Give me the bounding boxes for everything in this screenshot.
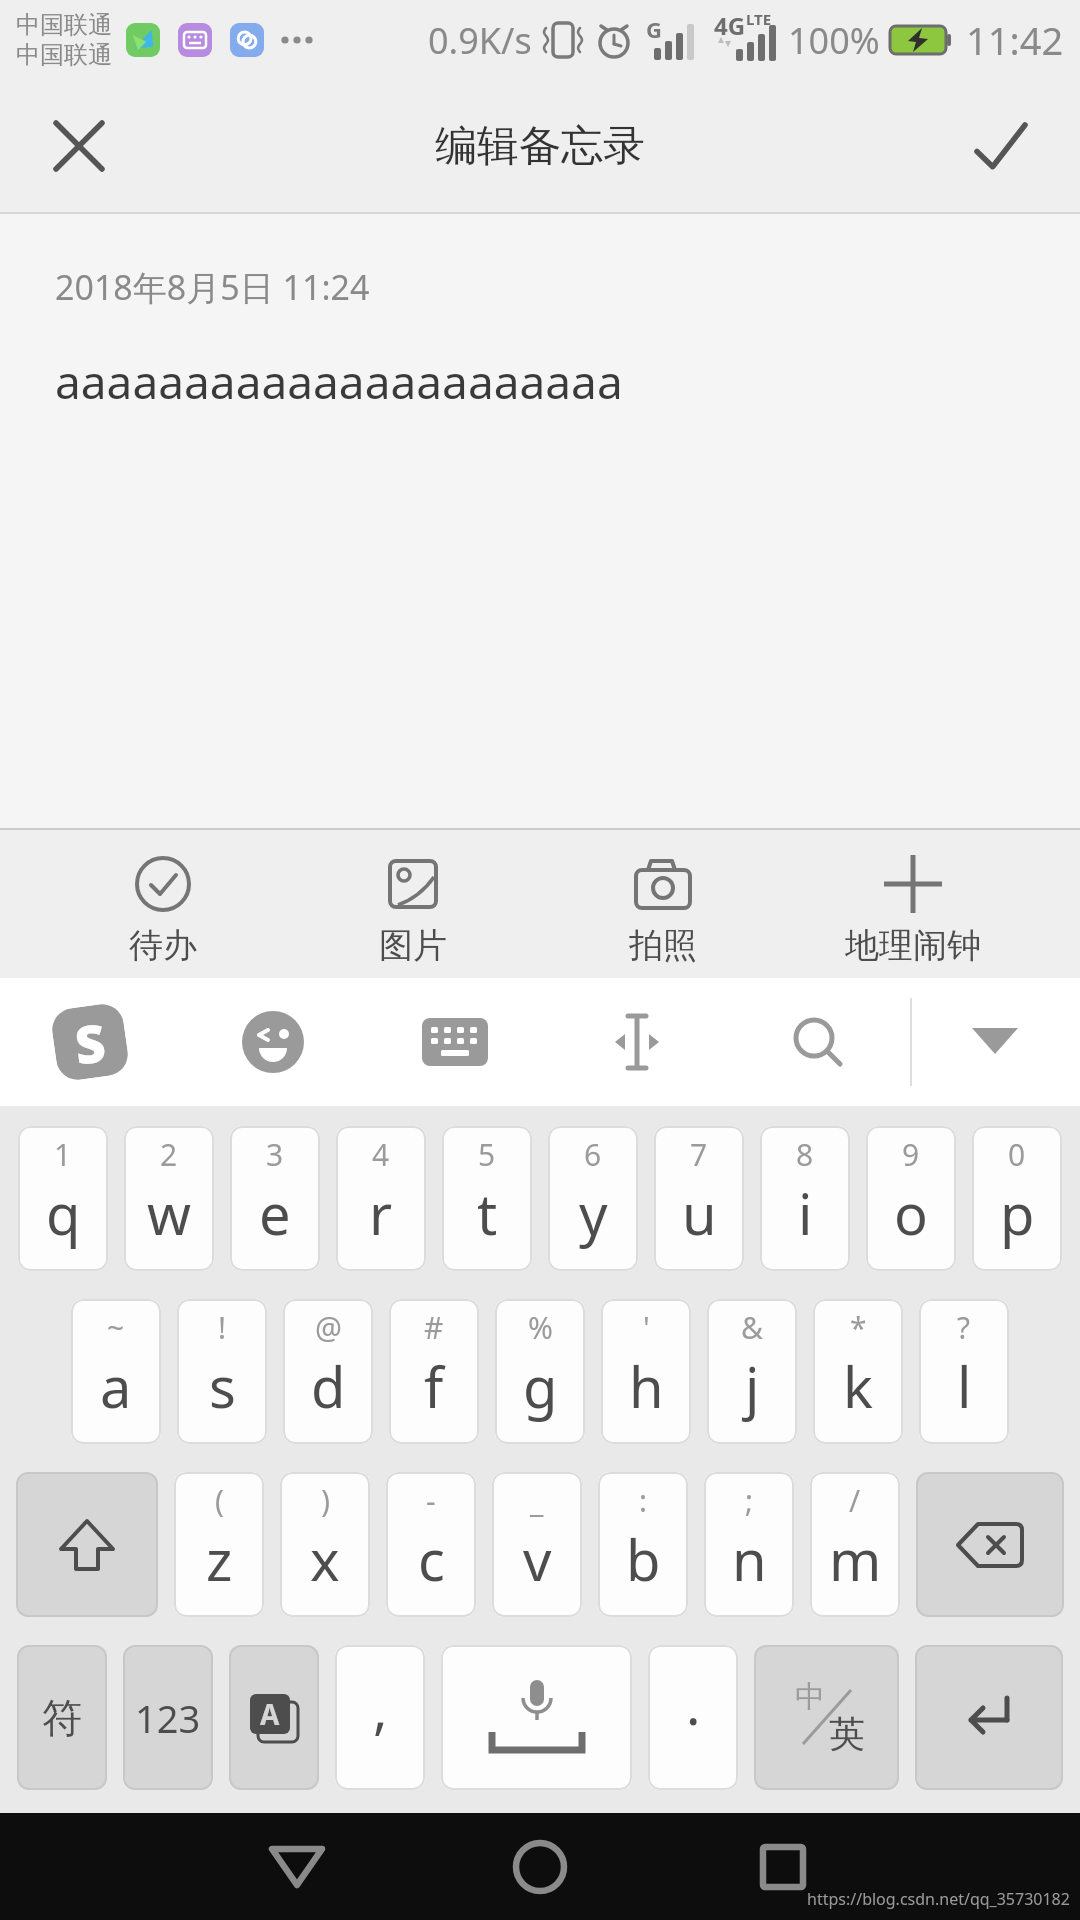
- staticText: k: [843, 1348, 873, 1424]
- staticText: 4: [372, 1134, 390, 1175]
- staticText: b: [626, 1521, 661, 1597]
- button[interactable]: [441, 1645, 632, 1790]
- staticText: 9: [902, 1134, 920, 1175]
- button[interactable]: ': [601, 1299, 691, 1444]
- button[interactable]: [217, 1813, 377, 1920]
- button[interactable]: 地理闹钟: [803, 830, 1023, 978]
- staticText: /: [849, 1480, 861, 1521]
- button[interactable]: 1: [18, 1126, 108, 1271]
- staticText: @: [315, 1307, 342, 1348]
- button[interactable]: 待办: [53, 830, 273, 978]
- staticText: a: [100, 1348, 132, 1424]
- button[interactable]: [763, 987, 873, 1097]
- button[interactable]: 9: [866, 1126, 956, 1271]
- staticText: y: [579, 1175, 608, 1251]
- button[interactable]: :: [598, 1472, 688, 1617]
- staticText: s: [209, 1348, 236, 1424]
- staticText: !: [218, 1307, 227, 1348]
- staticText: d: [311, 1348, 346, 1424]
- button[interactable]: %: [495, 1299, 585, 1444]
- staticText: ;: [745, 1480, 754, 1521]
- staticText: e: [259, 1175, 291, 1251]
- button[interactable]: [966, 111, 1036, 181]
- button[interactable]: [916, 1472, 1064, 1617]
- button[interactable]: .: [648, 1645, 738, 1790]
- button[interactable]: [460, 1813, 620, 1920]
- button[interactable]: 123: [123, 1645, 213, 1790]
- button[interactable]: [218, 987, 328, 1097]
- button[interactable]: #: [389, 1299, 479, 1444]
- button[interactable]: /: [810, 1472, 900, 1617]
- staticText: _: [530, 1480, 544, 1521]
- staticText: h: [629, 1348, 664, 1424]
- staticText: 2018年8月5日 11:24: [55, 264, 370, 310]
- staticText: 编辑备忘录: [435, 120, 645, 173]
- staticText: ): [321, 1480, 330, 1521]
- button[interactable]: 符: [17, 1645, 107, 1790]
- button[interactable]: S: [35, 987, 145, 1097]
- staticText: 地理闹钟: [845, 924, 981, 967]
- staticText: n: [732, 1521, 767, 1597]
- button[interactable]: _: [492, 1472, 582, 1617]
- button[interactable]: [400, 987, 510, 1097]
- button[interactable]: 5: [442, 1126, 532, 1271]
- staticText: z: [206, 1521, 233, 1597]
- button[interactable]: 8: [760, 1126, 850, 1271]
- staticText: S: [69, 1004, 112, 1080]
- button[interactable]: ,: [335, 1645, 425, 1790]
- staticText: 3: [266, 1134, 284, 1175]
- staticText: c: [418, 1521, 445, 1597]
- button[interactable]: 拍照: [553, 830, 773, 978]
- button[interactable]: ): [280, 1472, 370, 1617]
- staticText: 图片: [379, 924, 447, 967]
- staticText: 待办: [129, 924, 197, 967]
- staticText: 123: [135, 1692, 201, 1744]
- button[interactable]: [940, 987, 1050, 1097]
- button[interactable]: 图片: [303, 830, 523, 978]
- staticText: 1: [54, 1134, 72, 1175]
- button[interactable]: [582, 987, 692, 1097]
- staticText: 8: [796, 1134, 814, 1175]
- staticText: p: [1000, 1175, 1035, 1251]
- button[interactable]: 4: [336, 1126, 426, 1271]
- staticText: w: [147, 1175, 192, 1251]
- staticText: ,: [373, 1671, 388, 1745]
- staticText: 0: [1008, 1134, 1026, 1175]
- button[interactable]: *: [813, 1299, 903, 1444]
- staticText: 2: [160, 1134, 178, 1175]
- staticText: .: [686, 1667, 701, 1741]
- button[interactable]: A: [229, 1645, 319, 1790]
- staticText: 11:42: [966, 14, 1064, 66]
- button[interactable]: 3: [230, 1126, 320, 1271]
- staticText: https://blog.csdn.net/qq_35730182: [807, 1888, 1070, 1910]
- staticText: 符: [42, 1693, 82, 1743]
- button[interactable]: [703, 1813, 863, 1920]
- staticText: 0.9K/s: [428, 16, 532, 65]
- button[interactable]: ~: [71, 1299, 161, 1444]
- button[interactable]: 6: [548, 1126, 638, 1271]
- staticText: 7: [690, 1134, 708, 1175]
- button[interactable]: [44, 111, 114, 181]
- button[interactable]: !: [177, 1299, 267, 1444]
- button[interactable]: (: [174, 1472, 264, 1617]
- staticText: l: [957, 1348, 972, 1424]
- button[interactable]: 中: [754, 1645, 899, 1790]
- button[interactable]: 0: [972, 1126, 1062, 1271]
- staticText: 拍照: [629, 924, 697, 967]
- button[interactable]: ;: [704, 1472, 794, 1617]
- button[interactable]: @: [283, 1299, 373, 1444]
- staticText: 4G: [714, 9, 746, 42]
- button[interactable]: &: [707, 1299, 797, 1444]
- button[interactable]: ?: [919, 1299, 1009, 1444]
- button[interactable]: 2: [124, 1126, 214, 1271]
- staticText: j: [745, 1348, 760, 1424]
- staticText: o: [894, 1175, 928, 1251]
- staticText: r: [369, 1175, 393, 1251]
- staticText: u: [682, 1175, 717, 1251]
- button[interactable]: [16, 1472, 158, 1617]
- button[interactable]: -: [386, 1472, 476, 1617]
- button[interactable]: 7: [654, 1126, 744, 1271]
- button[interactable]: [915, 1645, 1063, 1790]
- staticText: 中国联通: [16, 10, 112, 40]
- staticText: v: [523, 1521, 552, 1597]
